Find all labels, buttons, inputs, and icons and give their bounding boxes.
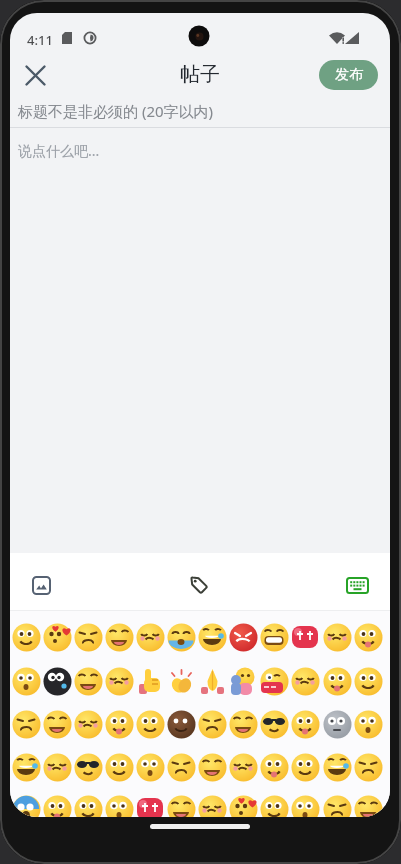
button[interactable] bbox=[136, 710, 165, 739]
button[interactable] bbox=[260, 667, 289, 696]
button[interactable] bbox=[291, 795, 320, 817]
button[interactable] bbox=[12, 623, 41, 652]
button[interactable] bbox=[229, 795, 258, 817]
button[interactable] bbox=[198, 710, 227, 739]
button[interactable] bbox=[74, 623, 103, 652]
button[interactable] bbox=[198, 795, 227, 817]
button[interactable] bbox=[354, 710, 383, 739]
button[interactable] bbox=[43, 753, 72, 782]
button[interactable] bbox=[43, 795, 72, 817]
button[interactable] bbox=[12, 710, 41, 739]
staticText: 帖子 bbox=[10, 62, 390, 87]
button[interactable] bbox=[291, 710, 320, 739]
button[interactable] bbox=[179, 565, 219, 605]
staticText: 4:11 bbox=[27, 31, 53, 49]
button[interactable] bbox=[323, 710, 352, 739]
button[interactable] bbox=[136, 795, 165, 817]
button[interactable] bbox=[198, 623, 227, 652]
button[interactable] bbox=[229, 710, 258, 739]
button[interactable] bbox=[229, 753, 258, 782]
button[interactable] bbox=[337, 565, 377, 605]
button[interactable] bbox=[167, 623, 196, 652]
button[interactable] bbox=[260, 623, 289, 652]
button[interactable] bbox=[291, 667, 320, 696]
button[interactable] bbox=[323, 623, 352, 652]
button[interactable] bbox=[105, 753, 134, 782]
button[interactable] bbox=[19, 59, 51, 91]
button[interactable] bbox=[136, 623, 165, 652]
button[interactable] bbox=[198, 753, 227, 782]
button[interactable] bbox=[167, 753, 196, 782]
button[interactable] bbox=[43, 623, 72, 652]
button[interactable] bbox=[323, 795, 352, 817]
button[interactable] bbox=[74, 795, 103, 817]
button[interactable] bbox=[12, 795, 41, 817]
button[interactable] bbox=[323, 667, 352, 696]
staticText: 说点什么吧... bbox=[18, 141, 100, 160]
button[interactable] bbox=[105, 667, 134, 696]
button[interactable] bbox=[74, 667, 103, 696]
button[interactable] bbox=[260, 710, 289, 739]
button[interactable] bbox=[167, 710, 196, 739]
button[interactable] bbox=[136, 753, 165, 782]
button[interactable] bbox=[43, 667, 72, 696]
button[interactable] bbox=[291, 623, 320, 652]
button[interactable] bbox=[198, 667, 227, 696]
button[interactable] bbox=[74, 753, 103, 782]
button[interactable] bbox=[167, 795, 196, 817]
button[interactable] bbox=[105, 795, 134, 817]
button[interactable]: 发布 bbox=[319, 60, 378, 90]
button[interactable] bbox=[354, 753, 383, 782]
button[interactable] bbox=[74, 710, 103, 739]
button[interactable] bbox=[260, 753, 289, 782]
button[interactable] bbox=[105, 710, 134, 739]
button[interactable] bbox=[12, 753, 41, 782]
button[interactable] bbox=[43, 710, 72, 739]
button[interactable] bbox=[136, 667, 165, 696]
button[interactable] bbox=[21, 565, 61, 605]
staticText: 标题不是非必须的 (20字以内) bbox=[18, 101, 214, 121]
button[interactable] bbox=[229, 623, 258, 652]
button[interactable] bbox=[229, 667, 258, 696]
staticText: 发布 bbox=[335, 66, 363, 84]
button[interactable] bbox=[354, 623, 383, 652]
button[interactable] bbox=[260, 795, 289, 817]
button[interactable] bbox=[354, 795, 383, 817]
button[interactable] bbox=[291, 753, 320, 782]
button[interactable] bbox=[354, 667, 383, 696]
button[interactable] bbox=[12, 667, 41, 696]
button[interactable] bbox=[167, 667, 196, 696]
button[interactable] bbox=[323, 753, 352, 782]
button[interactable] bbox=[105, 623, 134, 652]
